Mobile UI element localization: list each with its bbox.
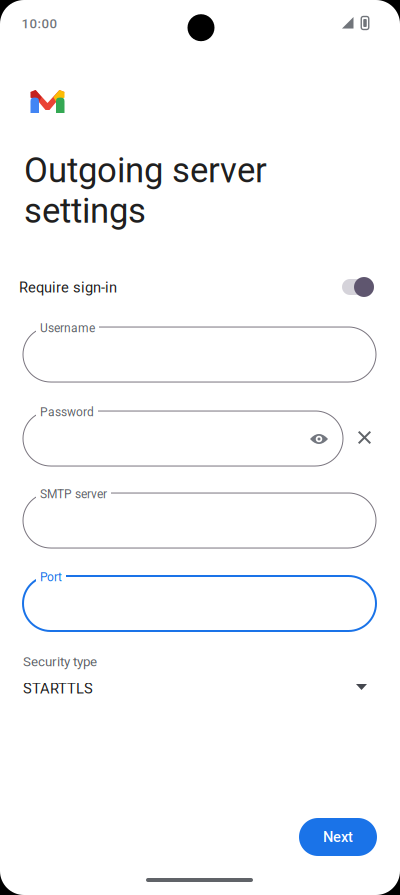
button[interactable]: Require sign-in <box>342 276 386 298</box>
button[interactable]: Show password <box>304 424 334 454</box>
staticText: Require sign-in <box>19 279 117 296</box>
staticText: Outgoing server settings <box>24 150 267 231</box>
staticText: Port <box>40 570 62 584</box>
staticText: Username <box>40 321 95 335</box>
button[interactable]: Security type <box>0 654 396 700</box>
staticText: 10:00 <box>21 16 57 32</box>
staticText: Password <box>40 405 94 419</box>
staticText: STARTTLS <box>23 680 93 697</box>
button[interactable]: Next <box>299 818 377 856</box>
staticText: Security type <box>23 654 97 670</box>
staticText: Next <box>323 828 353 846</box>
button[interactable]: Clear password <box>352 425 378 451</box>
staticText: SMTP server <box>40 487 107 501</box>
